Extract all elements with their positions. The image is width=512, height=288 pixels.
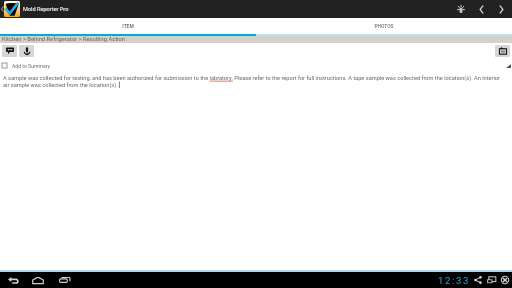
- button[interactable]: ITEM: [0, 18, 256, 34]
- button[interactable]: Next: [491, 0, 511, 18]
- staticText: 12:33: [438, 275, 470, 286]
- button[interactable]: Kitchen > Behind Refrigerator > Resultin…: [0, 36, 512, 43]
- button[interactable]: Tips: [451, 0, 471, 18]
- button[interactable]: Share: [472, 272, 484, 288]
- staticText: Mold Reporter Pro: [23, 6, 69, 13]
- button[interactable]: Close: [498, 272, 511, 288]
- staticText: Add to Summary: [12, 63, 50, 69]
- button[interactable]: Photos: [495, 45, 510, 57]
- button[interactable]: Back: [2, 272, 23, 288]
- button[interactable]: Home: [27, 272, 49, 288]
- staticText: A sample was collected for testing, and …: [3, 75, 506, 88]
- staticText: Kitchen > Behind Refrigerator > Resultin…: [2, 36, 126, 43]
- button[interactable]: Mold Reporter Pro: [4, 1, 20, 17]
- staticText: PHOTOS: [374, 23, 394, 29]
- button[interactable]: Recents: [53, 272, 75, 288]
- button[interactable]: Voice input: [19, 45, 34, 57]
- button[interactable]: Multi window: [484, 272, 498, 288]
- button[interactable]: PHOTOS: [256, 18, 512, 34]
- button[interactable]: Add to Summary: [0, 61, 512, 70]
- button[interactable]: Previous: [471, 0, 491, 18]
- staticText: ITEM: [122, 23, 134, 29]
- button[interactable]: Comments: [2, 45, 17, 57]
